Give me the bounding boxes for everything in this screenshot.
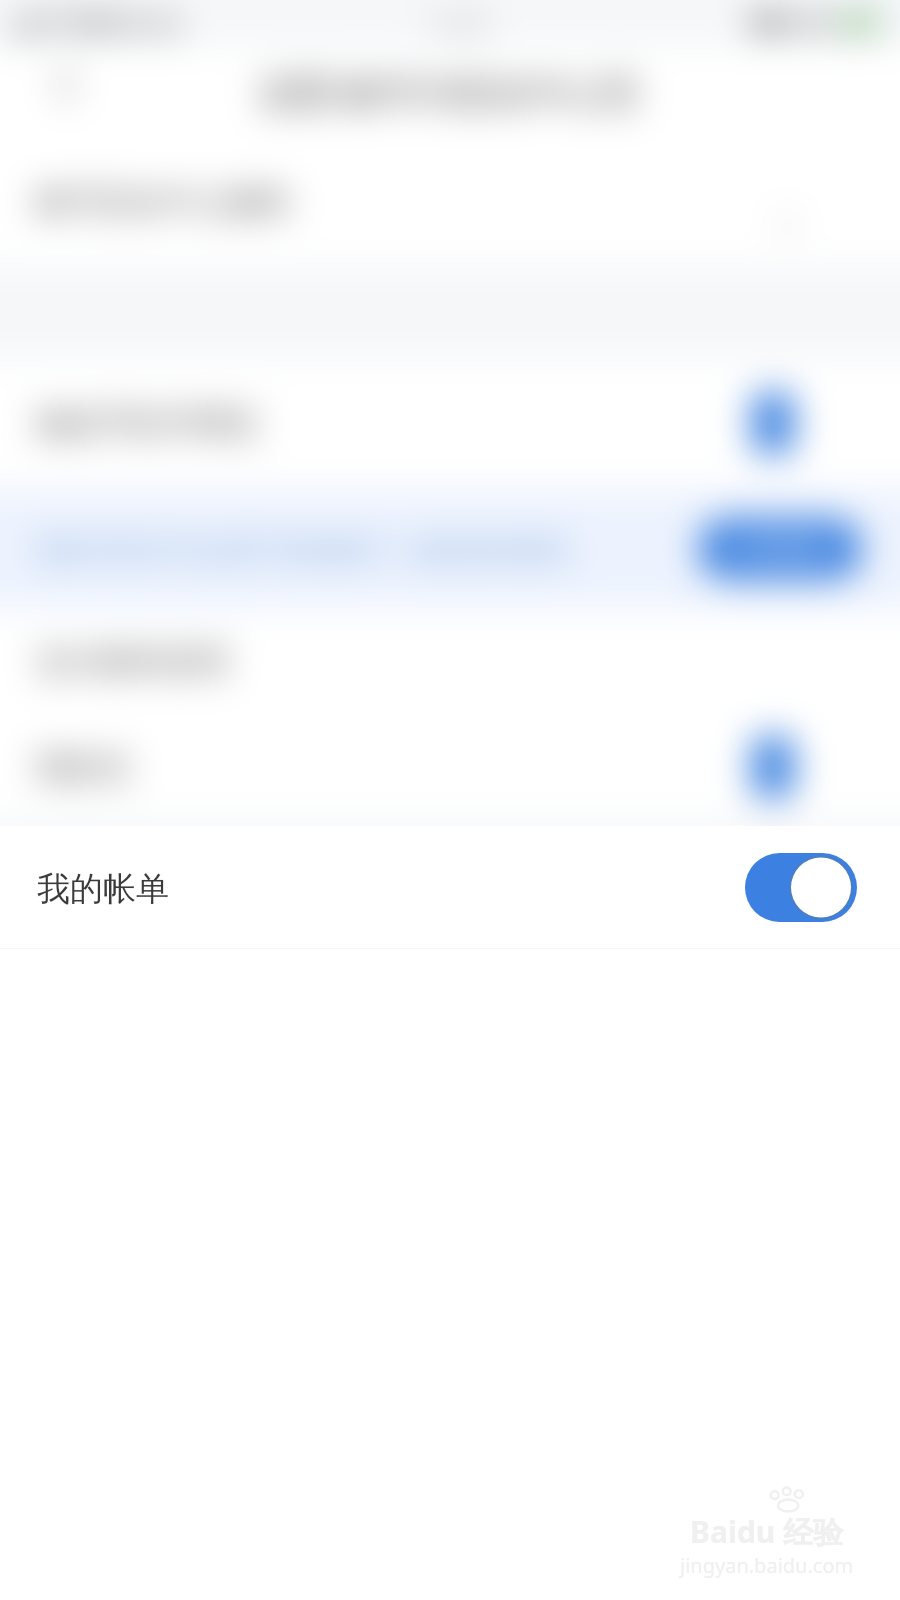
staticText: 修改手机号绑定 xyxy=(36,403,260,443)
staticText: 支付密码管理 xyxy=(36,642,228,682)
staticText: 设置 账号与安全中心页 xyxy=(260,66,640,117)
button[interactable]: 我的帐单 xyxy=(0,826,900,948)
staticText: 账号安全中心服务 xyxy=(36,182,292,222)
staticText: Baidu 经验 xyxy=(690,1511,844,1552)
button[interactable]: 立即绑定 xyxy=(698,518,862,580)
button[interactable]: 修改手机号绑定 xyxy=(0,358,900,488)
button[interactable]: 支付密码管理 xyxy=(0,610,900,714)
button[interactable]: 指纹支 xyxy=(0,714,900,820)
staticText: 我的帐单 xyxy=(37,868,169,910)
staticText: 87% xyxy=(783,6,833,40)
staticText: 立即绑定 xyxy=(732,534,828,564)
button[interactable]: Toggle my bills xyxy=(745,853,857,922)
staticText: jingyan.baidu.com xyxy=(680,1552,854,1579)
button[interactable]: 绑定手机号可以用于登录账号 · 找回登录密码 xyxy=(0,488,900,610)
staticText: 指纹支 xyxy=(36,747,132,787)
